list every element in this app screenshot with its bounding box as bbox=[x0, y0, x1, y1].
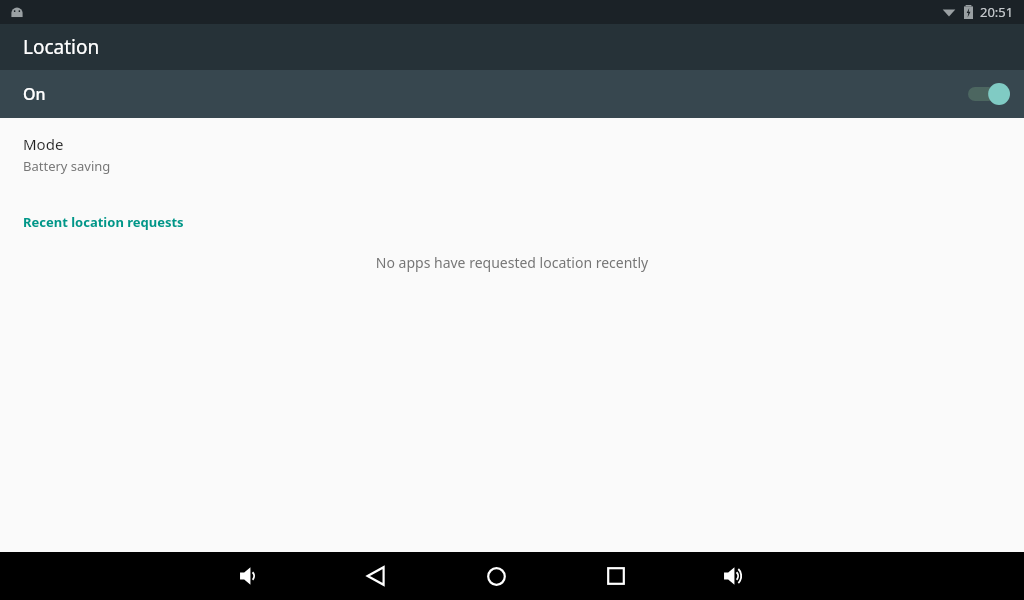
button[interactable]: Recent location requests bbox=[0, 189, 1024, 235]
button[interactable]: Recent apps bbox=[594, 554, 638, 598]
staticText: Mode bbox=[23, 134, 64, 154]
button[interactable]: Volume up bbox=[714, 554, 758, 598]
staticText: 20:51 bbox=[980, 3, 1014, 21]
button[interactable]: Home bbox=[474, 554, 518, 598]
button[interactable]: Mode bbox=[0, 118, 1024, 189]
button[interactable]: On bbox=[0, 70, 1024, 118]
button[interactable]: Volume down bbox=[230, 554, 274, 598]
button[interactable]: Back bbox=[354, 554, 398, 598]
button[interactable]: Location on/off bbox=[968, 81, 1010, 107]
staticText: Location bbox=[23, 34, 100, 60]
staticText: Recent location requests bbox=[23, 213, 184, 231]
staticText: No apps have requested location recently bbox=[0, 253, 1024, 272]
staticText: Battery saving bbox=[23, 157, 111, 175]
staticText: On bbox=[23, 83, 46, 105]
